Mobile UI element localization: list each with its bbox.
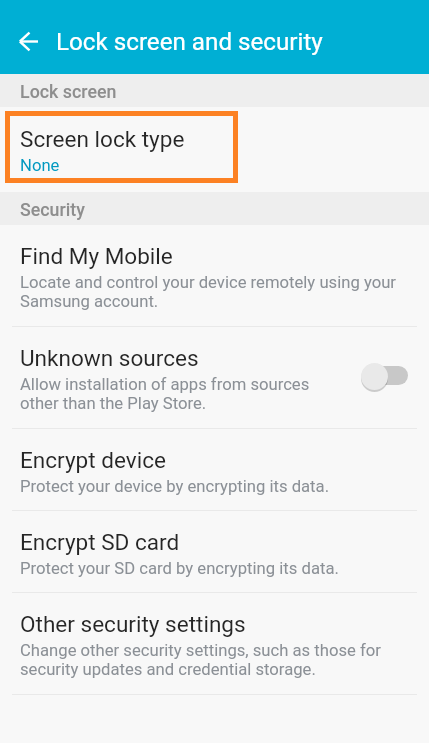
staticText: Lock screen [20,81,117,102]
staticText: Other security settings [20,611,246,637]
staticText: Encrypt SD card [20,529,180,555]
staticText: Change other security settings, such as … [20,641,381,679]
staticText: Locate and control your device remotely … [20,273,396,311]
staticText: Lock screen and security [56,28,323,56]
button[interactable]: Screen lock type [0,107,429,192]
staticText: Unknown sources [20,345,199,371]
staticText: Protect your device by encrypting its da… [20,477,330,497]
staticText: Allow installation of apps from sources … [20,375,310,413]
staticText: Security [20,199,85,220]
button[interactable]: Encrypt device [0,429,429,511]
button[interactable]: Find My Mobile [0,225,429,327]
staticText: Screen lock type [20,126,185,152]
button[interactable]: Encrypt SD card [0,511,429,593]
staticText: Find My Mobile [20,243,173,269]
button[interactable]: Unknown sources switch, off [361,361,417,397]
staticText: Encrypt device [20,447,166,473]
button[interactable]: Back [11,24,46,59]
staticText: None [20,156,60,176]
button[interactable]: Other security settings [0,593,429,695]
button[interactable]: Unknown sources [0,327,429,429]
staticText: Protect your SD card by encrypting its d… [20,559,339,579]
